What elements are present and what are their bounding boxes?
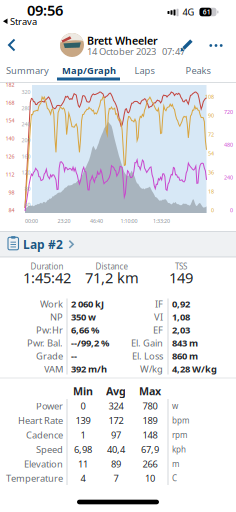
staticText: 4 <box>80 472 85 484</box>
staticText: 4G <box>182 6 194 18</box>
staticText: 320 <box>21 88 30 96</box>
staticText: Laps <box>134 64 154 77</box>
staticText: rpm <box>172 430 187 440</box>
staticText: 200 <box>21 137 30 144</box>
staticText: 720 <box>224 108 233 115</box>
staticText: 98 <box>8 189 14 196</box>
staticText: 1:33:20 <box>153 217 170 225</box>
staticText: 280 <box>21 105 30 112</box>
staticText: 0 <box>211 207 214 214</box>
staticText: VAM <box>44 363 63 375</box>
staticText: 6,98 <box>74 443 92 456</box>
staticText: 67,9 <box>141 443 159 456</box>
staticText: 2 060 kJ <box>71 298 104 310</box>
staticText: Map/Graph <box>62 64 116 77</box>
staticText: m <box>172 458 179 469</box>
staticText: 40,4 <box>107 443 125 456</box>
staticText: 149 <box>169 268 193 287</box>
button[interactable]: Edit <box>180 37 195 52</box>
staticText: TSS <box>175 261 187 272</box>
staticText: Elevation <box>24 458 63 470</box>
staticText: Strava <box>10 15 37 28</box>
staticText: 266 <box>142 458 157 470</box>
staticText: 172 <box>108 414 123 427</box>
staticText: 240 <box>224 174 233 181</box>
staticText: 324 <box>108 400 123 412</box>
staticText: 23:20 <box>57 217 70 225</box>
staticText: 10 <box>145 472 155 484</box>
staticText: Peaks <box>185 64 210 77</box>
staticText: 182 <box>5 81 14 88</box>
staticText: kph <box>172 444 186 455</box>
staticText: Work <box>40 298 63 310</box>
button[interactable]: Map/Graph <box>62 64 116 77</box>
staticText: IF <box>155 298 163 310</box>
button[interactable]: Summary <box>6 64 49 77</box>
staticText: Lap #2 <box>23 236 63 252</box>
staticText: 139 <box>75 414 90 427</box>
staticText: Heart Rate <box>18 414 63 427</box>
staticText: 2,03 <box>172 324 190 336</box>
staticText: 0 <box>230 207 233 214</box>
button[interactable]: Peaks <box>185 64 210 77</box>
staticText: 36 <box>208 169 214 176</box>
staticText: Grade <box>36 350 63 362</box>
staticText: NP <box>50 311 63 323</box>
staticText: 72 <box>208 131 214 138</box>
staticText: 843 m <box>172 337 198 349</box>
staticText: El. Loss <box>132 350 163 362</box>
staticText: VI <box>154 311 163 323</box>
staticText: 40 <box>24 201 30 208</box>
staticText: 154 <box>5 117 14 124</box>
staticText: 18 <box>208 188 214 195</box>
staticText: 160 <box>21 153 30 160</box>
staticText: 126 <box>5 153 14 160</box>
button[interactable]: Laps <box>134 64 154 77</box>
staticText: 4,28 W/kg <box>172 363 217 375</box>
staticText: 71,2 km <box>85 268 139 287</box>
staticText: 168 <box>5 99 14 106</box>
staticText: 07:47 <box>162 45 185 58</box>
staticText: 140 <box>5 135 14 142</box>
staticText: 0 <box>80 400 85 412</box>
button[interactable]: Lap #2 <box>0 231 236 257</box>
staticText: 148 <box>142 429 157 441</box>
staticText: 108 <box>205 93 214 100</box>
staticText: 84 <box>8 207 14 214</box>
button[interactable]: More <box>209 44 223 47</box>
staticText: EF <box>153 324 163 336</box>
staticText: 480 <box>224 141 233 148</box>
staticText: Brett Wheeler <box>87 33 158 48</box>
staticText: 1,08 <box>172 311 190 323</box>
button[interactable]: Back <box>8 38 16 51</box>
staticText: 14 October 2023 <box>87 45 156 58</box>
staticText: 7 <box>113 472 118 484</box>
staticText: 240 <box>21 121 30 128</box>
staticText: 0,92 <box>172 298 190 310</box>
staticText: Min <box>73 384 93 398</box>
staticText: 1 <box>80 429 85 441</box>
staticText: 46:40 <box>90 217 103 225</box>
staticText: 61 <box>203 8 211 16</box>
staticText: Summary <box>6 64 49 77</box>
staticText: Speed <box>36 443 63 456</box>
staticText: -- <box>71 350 77 362</box>
staticText: Avg <box>106 384 126 398</box>
staticText: 6,66 % <box>71 324 99 336</box>
staticText: Distance <box>95 261 128 272</box>
staticText: Cadence <box>26 429 63 441</box>
staticText: Pwr. Bal. <box>27 337 63 349</box>
staticText: W/kg <box>140 363 163 375</box>
staticText: Pw:Hr <box>36 324 63 336</box>
staticText: 1:45:42 <box>23 268 71 287</box>
staticText: 80 <box>24 185 30 192</box>
staticText: C <box>172 473 177 483</box>
staticText: 120 <box>21 169 30 176</box>
staticText: 1:10:00 <box>120 217 137 225</box>
staticText: Temperature <box>6 472 63 484</box>
staticText: bpm <box>172 415 189 426</box>
staticText: 97 <box>111 429 121 441</box>
staticText: 189 <box>142 414 157 427</box>
staticText: El. Gain <box>131 337 163 349</box>
staticText: 392 m/h <box>71 363 107 375</box>
